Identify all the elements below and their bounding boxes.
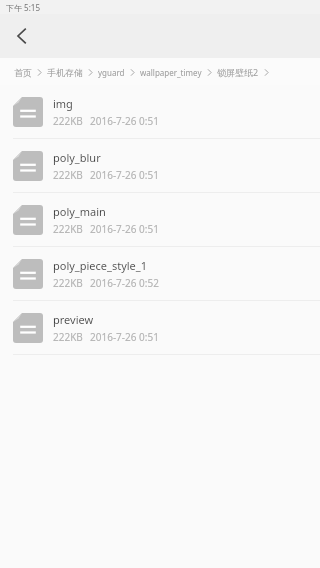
button[interactable]: 手机存储 — [47, 67, 83, 78]
staticText: poly_piece_style_1 — [53, 258, 147, 273]
staticText: 222KB — [53, 168, 83, 182]
button[interactable]: poly_blur — [0, 139, 320, 192]
staticText: 222KB — [53, 114, 83, 128]
staticText: poly_main — [53, 204, 106, 219]
staticText: 手机存储 — [47, 67, 83, 78]
staticText: 222KB — [53, 222, 83, 236]
button[interactable]: preview — [0, 301, 320, 354]
button[interactable]: 锁屏壁纸2 — [217, 66, 259, 78]
staticText: 222KB — [53, 276, 83, 290]
staticText: 2016-7-26 0:51 — [90, 168, 159, 182]
staticText: 2016-7-26 0:52 — [90, 276, 159, 290]
staticText: poly_blur — [53, 150, 101, 165]
button[interactable]: wallpaper_timey — [140, 67, 202, 78]
button[interactable]: 首页 — [14, 67, 32, 78]
staticText: 2016-7-26 0:51 — [90, 114, 159, 128]
staticText: img — [53, 96, 73, 111]
staticText: 2016-7-26 0:51 — [90, 330, 159, 344]
staticText: wallpaper_timey — [140, 67, 202, 78]
button[interactable]: Back — [0, 14, 44, 58]
button[interactable]: yguard — [98, 67, 125, 78]
staticText: 2016-7-26 0:51 — [90, 222, 159, 236]
button[interactable]: poly_main — [0, 193, 320, 246]
staticText: 首页 — [14, 67, 32, 78]
staticText: yguard — [98, 67, 125, 78]
button[interactable]: poly_piece_style_1 — [0, 247, 320, 300]
staticText: 222KB — [53, 330, 83, 344]
staticText: 锁屏壁纸2 — [217, 66, 259, 78]
button[interactable]: img — [0, 85, 320, 138]
staticText: preview — [53, 312, 94, 327]
staticText: 下午 5:15 — [6, 2, 40, 13]
